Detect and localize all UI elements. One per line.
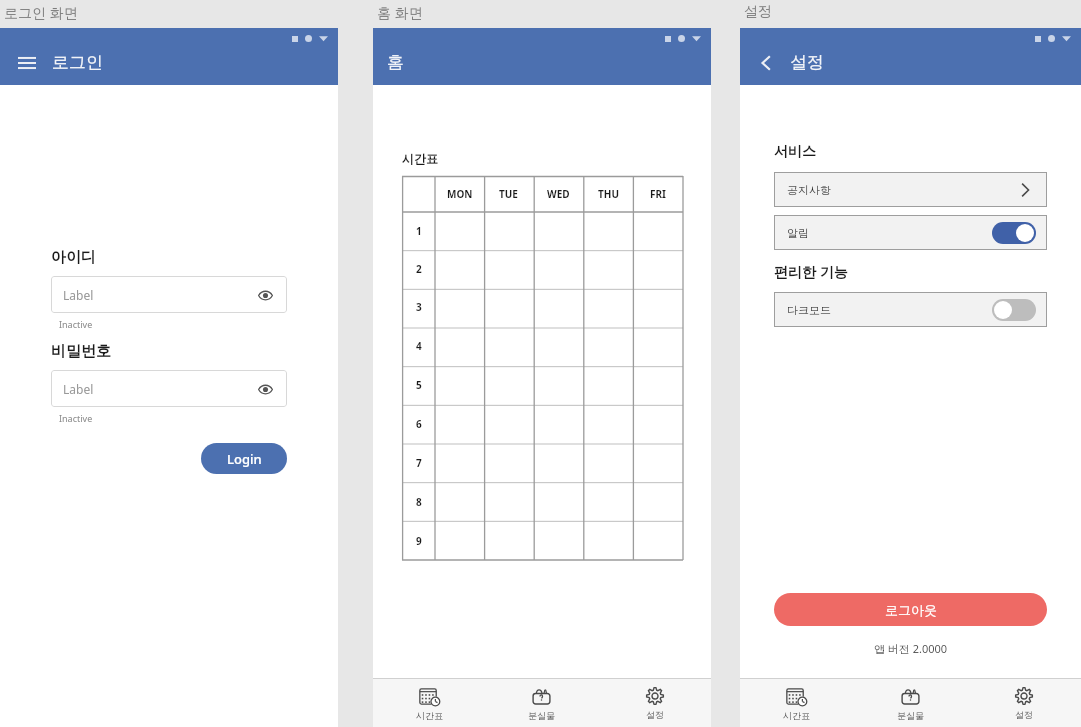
- button[interactable]: 분실물: [485, 679, 598, 727]
- button[interactable]: 알림: [774, 215, 1047, 250]
- button[interactable]: 설정: [967, 679, 1081, 727]
- staticText: 7: [416, 456, 422, 470]
- staticText: 2: [416, 262, 422, 276]
- button[interactable]: 공지사항: [774, 172, 1047, 207]
- staticText: 서비스: [774, 143, 816, 161]
- button[interactable]: Label: [51, 370, 287, 407]
- staticText: 홈 화면: [377, 3, 423, 22]
- staticText: TUE: [499, 187, 518, 201]
- button[interactable]: Toggle on: [992, 222, 1036, 244]
- staticText: 설정: [744, 3, 772, 21]
- button[interactable]: 시간표: [740, 679, 853, 727]
- staticText: 홈: [387, 52, 404, 73]
- button[interactable]: Login: [201, 443, 287, 474]
- staticText: Login: [227, 450, 262, 468]
- staticText: 편리한 기능: [774, 262, 848, 281]
- staticText: WED: [547, 187, 570, 201]
- staticText: FRI: [650, 187, 666, 201]
- staticText: 1: [416, 224, 422, 238]
- staticText: 9: [416, 534, 422, 548]
- button[interactable]: Toggle off: [992, 299, 1036, 321]
- staticText: Inactive: [59, 412, 93, 424]
- staticText: 3: [416, 300, 422, 314]
- button[interactable]: Show password: [255, 285, 275, 305]
- staticText: MON: [447, 187, 473, 201]
- button[interactable]: Menu: [14, 50, 40, 76]
- staticText: 공지사항: [787, 183, 831, 197]
- staticText: 시간표: [402, 151, 438, 166]
- button[interactable]: Show password: [255, 379, 275, 399]
- staticText: 설정: [790, 52, 824, 73]
- staticText: 4: [416, 339, 422, 353]
- button[interactable]: 시간표: [373, 679, 485, 727]
- staticText: 8: [416, 495, 422, 509]
- staticText: 다크모드: [787, 303, 831, 317]
- button[interactable]: 분실물: [853, 679, 967, 727]
- staticText: 시간표: [416, 710, 443, 721]
- button[interactable]: 설정: [598, 679, 711, 727]
- staticText: 로그인 화면: [4, 3, 78, 22]
- staticText: Label: [63, 381, 94, 397]
- staticText: Label: [63, 287, 94, 303]
- staticText: 비밀번호: [51, 342, 111, 361]
- button[interactable]: 다크모드: [774, 292, 1047, 327]
- staticText: 설정: [646, 709, 664, 720]
- staticText: 앱 버전 2.0000: [774, 641, 1047, 656]
- button[interactable]: 로그아웃: [774, 593, 1047, 626]
- staticText: 시간표: [783, 710, 810, 721]
- staticText: 5: [416, 378, 422, 392]
- button[interactable]: Label: [51, 276, 287, 313]
- staticText: 분실물: [897, 710, 924, 721]
- staticText: Inactive: [59, 318, 93, 330]
- staticText: 알림: [787, 226, 809, 240]
- staticText: 설정: [1015, 709, 1033, 720]
- button[interactable]: Back: [754, 50, 780, 76]
- staticText: 아이디: [51, 248, 96, 267]
- staticText: 분실물: [528, 710, 555, 721]
- staticText: THU: [598, 187, 619, 201]
- staticText: 로그인: [52, 52, 103, 73]
- staticText: 로그아웃: [885, 602, 937, 618]
- staticText: 6: [416, 417, 422, 431]
